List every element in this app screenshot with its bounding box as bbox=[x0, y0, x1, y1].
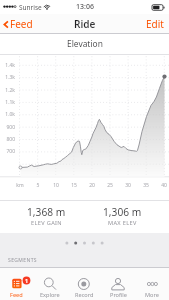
staticText: km bbox=[12, 182, 28, 189]
staticText: 1 bbox=[25, 277, 29, 284]
staticText: 5 bbox=[30, 182, 46, 189]
staticText: 40 bbox=[156, 182, 169, 189]
staticText: 1.4k bbox=[0, 62, 15, 69]
button[interactable]: Edit bbox=[141, 14, 169, 34]
staticText: Record bbox=[75, 291, 94, 299]
staticText: 20 bbox=[84, 182, 100, 189]
staticText: Explore bbox=[40, 291, 60, 299]
staticText: 1.3k bbox=[0, 74, 15, 81]
staticText: Feed bbox=[10, 17, 33, 31]
staticText: 15 bbox=[66, 182, 82, 189]
staticText: Elevation bbox=[67, 38, 103, 49]
staticText: 900 bbox=[0, 124, 15, 131]
staticText: ELEV GAIN bbox=[31, 219, 62, 227]
staticText: 35 bbox=[138, 182, 154, 189]
button[interactable]: Feed bbox=[0, 14, 37, 34]
staticText: 700 bbox=[0, 148, 15, 155]
staticText: 10 bbox=[48, 182, 64, 189]
button[interactable]: More bbox=[135, 267, 169, 300]
button[interactable]: Profile bbox=[101, 267, 135, 300]
staticText: 30 bbox=[120, 182, 136, 189]
staticText: Sunrise bbox=[19, 3, 42, 12]
button[interactable]: Explore bbox=[33, 267, 67, 300]
staticText: Profile bbox=[110, 291, 127, 299]
staticText: 1,368 m bbox=[27, 205, 66, 219]
staticText: 1.1k bbox=[0, 99, 15, 106]
staticText: MAX ELEV bbox=[108, 219, 137, 227]
staticText: 1.2k bbox=[0, 87, 15, 94]
staticText: Edit bbox=[146, 17, 164, 31]
staticText: Ride bbox=[74, 17, 96, 31]
staticText: 25 bbox=[102, 182, 118, 189]
staticText: 800 bbox=[0, 136, 15, 143]
staticText: 1,306 m bbox=[103, 205, 142, 219]
staticText: 1.0k bbox=[0, 111, 15, 118]
staticText: SEGMENTS bbox=[8, 257, 38, 264]
staticText: Feed bbox=[10, 291, 23, 299]
button[interactable]: Feed bbox=[0, 267, 33, 300]
staticText: More bbox=[145, 291, 159, 299]
staticText: 13:06 bbox=[76, 2, 94, 12]
button[interactable]: Record bbox=[67, 267, 101, 300]
